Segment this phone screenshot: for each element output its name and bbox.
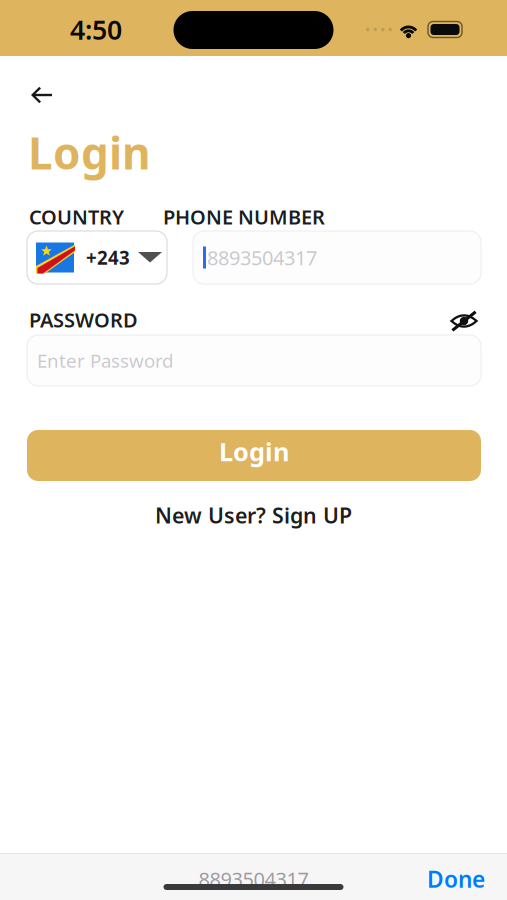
staticText: PHONE NUMBER bbox=[163, 203, 325, 230]
staticText: COUNTRY bbox=[29, 203, 124, 230]
button[interactable]: Back bbox=[0, 73, 69, 117]
button[interactable]: Done bbox=[427, 864, 507, 894]
staticText: 8893504317 bbox=[207, 244, 317, 271]
button[interactable]: New User? Sign UP bbox=[145, 495, 362, 535]
staticText: PASSWORD bbox=[29, 306, 138, 333]
staticText: Enter Password bbox=[37, 348, 173, 373]
staticText: Login bbox=[219, 435, 289, 468]
button[interactable]: +243 bbox=[27, 231, 167, 284]
staticText: +243 bbox=[86, 245, 130, 270]
staticText: 4:50 bbox=[70, 12, 122, 47]
button[interactable]: Show password bbox=[447, 309, 481, 333]
staticText: Done bbox=[427, 864, 485, 894]
staticText: New User? Sign UP bbox=[155, 501, 352, 529]
button[interactable]: Login bbox=[27, 430, 481, 481]
staticText: 8893504317 bbox=[198, 866, 308, 892]
staticText: Login bbox=[28, 123, 151, 182]
